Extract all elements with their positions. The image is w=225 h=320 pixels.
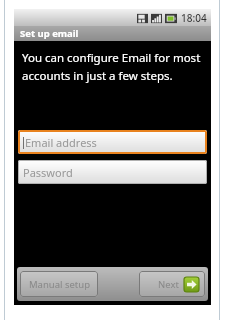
staticText: Set up email xyxy=(20,27,79,40)
staticText: Next xyxy=(158,278,179,291)
button[interactable]: Email address field xyxy=(18,130,207,154)
staticText: accounts in just a few steps. xyxy=(22,68,173,84)
button[interactable]: Next xyxy=(139,271,205,297)
staticText: Manual setup xyxy=(29,278,90,291)
other: Next xyxy=(184,277,199,292)
button[interactable]: Manual setup xyxy=(20,271,98,297)
staticText: 18:04 xyxy=(181,11,207,25)
staticText: Password xyxy=(23,165,73,180)
button[interactable]: Password field xyxy=(18,160,207,184)
staticText: Email address xyxy=(25,135,97,150)
staticText: You can configure Email for most xyxy=(22,50,201,66)
